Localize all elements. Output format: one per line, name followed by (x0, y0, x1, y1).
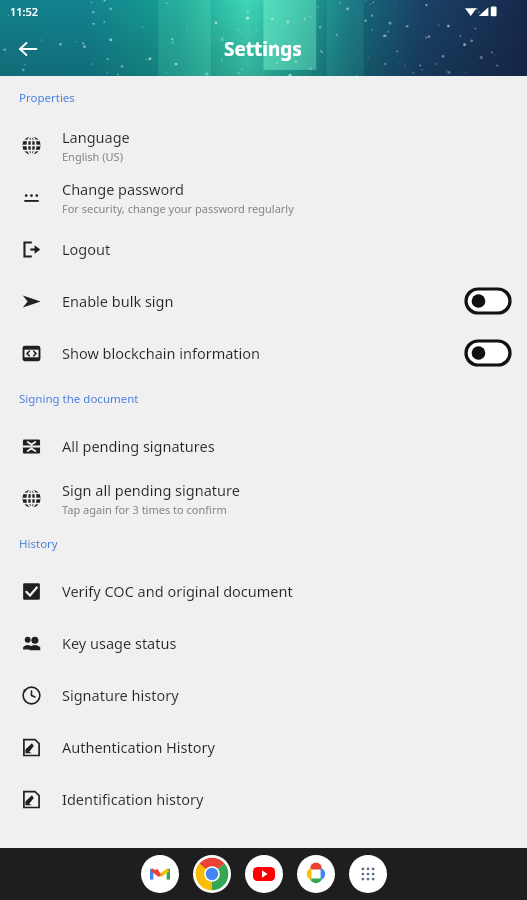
staticText: Signing the document (19, 391, 139, 407)
button[interactable]: Language (0, 119, 527, 171)
staticText: All pending signatures (62, 436, 215, 456)
button[interactable]: Back (6, 27, 50, 71)
staticText: For security, change your password regul… (62, 201, 294, 216)
button[interactable]: Key usage status (0, 617, 527, 669)
button[interactable]: Identification history (0, 773, 527, 825)
staticText: Enable bulk sign (62, 291, 174, 311)
button[interactable]: Logout (0, 223, 527, 275)
staticText: Settings (224, 36, 302, 62)
staticText: Tap again for 3 times to confirm (62, 502, 227, 517)
staticText: History (19, 536, 58, 552)
button[interactable]: Show blockchain information (0, 327, 527, 379)
staticText: Authentication History (62, 737, 215, 757)
staticText: Sign all pending signature (62, 480, 240, 500)
button[interactable]: All pending signatures (0, 420, 527, 472)
button[interactable]: YouTube (245, 855, 283, 893)
staticText: Properties (19, 90, 75, 106)
staticText: 11:52 (10, 4, 39, 19)
staticText: Identification history (62, 789, 204, 809)
button[interactable]: Enable bulk sign (0, 275, 527, 327)
staticText: English (US) (62, 149, 123, 164)
button[interactable]: All apps (349, 855, 387, 893)
button[interactable]: Chrome (193, 855, 231, 893)
staticText: Logout (62, 239, 111, 259)
staticText: Language (62, 127, 130, 147)
button[interactable]: Authentication History (0, 721, 527, 773)
staticText: Show blockchain information (62, 343, 261, 363)
button[interactable]: Toggle (465, 340, 511, 366)
button[interactable]: Photos (297, 855, 335, 893)
staticText: Signature history (62, 685, 179, 705)
staticText: Verify COC and original document (62, 581, 293, 601)
button[interactable]: Change password (0, 171, 527, 223)
button[interactable]: Toggle (465, 288, 511, 314)
button[interactable]: Signature history (0, 669, 527, 721)
staticText: Change password (62, 179, 184, 199)
staticText: Key usage status (62, 633, 177, 653)
button[interactable]: Sign all pending signature (0, 472, 527, 524)
button[interactable]: Gmail (141, 855, 179, 893)
button[interactable]: Verify COC and original document (0, 565, 527, 617)
